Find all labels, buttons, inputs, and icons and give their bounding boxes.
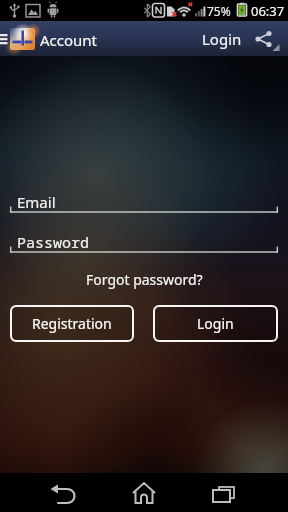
button[interactable]: Forgot password? bbox=[74, 266, 214, 292]
staticText: Password bbox=[17, 232, 90, 252]
button[interactable]: Password bbox=[10, 226, 278, 253]
button[interactable]: Email bbox=[10, 186, 278, 213]
staticText: 75% bbox=[207, 3, 231, 19]
button[interactable]: Login bbox=[153, 305, 278, 342]
button[interactable]: Registration bbox=[10, 305, 134, 342]
staticText: 06:37 bbox=[251, 2, 285, 20]
button[interactable] bbox=[36, 473, 92, 512]
staticText: Forgot password? bbox=[86, 270, 203, 289]
button[interactable]: Login bbox=[192, 21, 252, 56]
button[interactable]: Account bbox=[0, 21, 110, 56]
staticText: Email bbox=[17, 192, 56, 212]
staticText: Registration bbox=[32, 314, 112, 333]
button[interactable] bbox=[196, 473, 252, 512]
staticText: Account bbox=[40, 30, 98, 50]
staticText: Login bbox=[197, 314, 234, 333]
button[interactable] bbox=[116, 473, 172, 512]
staticText: Login bbox=[202, 29, 242, 49]
button[interactable] bbox=[250, 21, 288, 56]
